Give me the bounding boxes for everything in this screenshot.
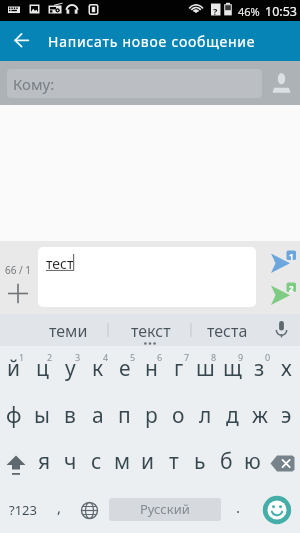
staticText: у — [65, 354, 76, 383]
staticText: 0 — [265, 351, 271, 363]
staticText: 1 — [19, 351, 25, 363]
staticText: 4 — [103, 351, 109, 363]
staticText: Русский — [140, 500, 190, 518]
staticText: ф — [6, 401, 22, 430]
staticText: ж — [252, 401, 268, 430]
button[interactable]: Кому: — [7, 69, 262, 98]
button[interactable]: Send with SIM 1 — [245, 247, 300, 279]
button[interactable]: ц — [28, 346, 56, 393]
staticText: а — [92, 401, 104, 430]
staticText: теми — [49, 320, 88, 342]
button[interactable]: . — [224, 487, 253, 533]
staticText: д — [226, 401, 239, 430]
button[interactable]: д — [219, 393, 246, 440]
button[interactable]: т — [161, 440, 187, 487]
button[interactable]: ь — [187, 440, 213, 487]
button[interactable]: п — [111, 393, 138, 440]
staticText: 10:53 — [265, 3, 297, 20]
button[interactable]: в — [56, 393, 84, 440]
staticText: ч — [64, 447, 77, 476]
button[interactable]: з — [246, 346, 273, 393]
staticText: ш — [196, 354, 215, 383]
button[interactable]: о — [165, 393, 192, 440]
staticText: 8 — [211, 351, 217, 363]
staticText: з — [254, 354, 265, 383]
button[interactable]: я — [31, 440, 57, 487]
button[interactable]: е — [111, 346, 138, 393]
button[interactable]: л — [192, 393, 219, 440]
button[interactable]: Change keyboard language — [73, 487, 106, 533]
staticText: 46% — [238, 4, 260, 19]
button[interactable]: Add attachment — [3, 279, 33, 309]
button[interactable]: ю — [239, 440, 265, 487]
button[interactable]: ы — [28, 393, 56, 440]
button[interactable]: р — [138, 393, 165, 440]
staticText: текст — [131, 320, 171, 342]
button[interactable]: э — [273, 393, 300, 440]
button[interactable]: теста — [191, 314, 263, 346]
button[interactable]: й — [0, 346, 28, 393]
button[interactable]: с — [83, 440, 109, 487]
button[interactable]: ф — [0, 393, 28, 440]
button[interactable]: к — [84, 346, 111, 393]
staticText: й — [7, 354, 21, 383]
button[interactable]: н — [138, 346, 165, 393]
staticText: н — [145, 354, 158, 383]
button[interactable]: ч — [57, 440, 83, 487]
staticText: р — [145, 401, 158, 430]
staticText: 7 — [184, 351, 190, 363]
staticText: о — [172, 401, 185, 430]
button[interactable]: тест — [38, 247, 256, 307]
staticText: Кому: — [13, 74, 55, 94]
staticText: л — [199, 401, 212, 430]
staticText: теста — [207, 320, 248, 342]
staticText: п — [118, 401, 131, 430]
staticText: 3 — [75, 351, 81, 363]
staticText: 2 — [289, 283, 294, 294]
button[interactable]: м — [109, 440, 135, 487]
staticText: Написать новое сообщение — [48, 32, 256, 51]
button[interactable]: Choose contact — [262, 61, 300, 105]
button[interactable]: Send with SIM 2 — [245, 279, 300, 311]
staticText: с — [91, 447, 102, 476]
button[interactable]: Back — [0, 21, 44, 61]
staticText: е — [119, 354, 131, 383]
button[interactable]: б — [213, 440, 239, 487]
staticText: 1 — [289, 251, 294, 262]
staticText: ь — [194, 447, 206, 476]
staticText: ? — [213, 5, 218, 17]
staticText: ?123 — [9, 501, 37, 519]
button[interactable]: Voice input — [263, 314, 300, 346]
button[interactable]: х — [273, 346, 300, 393]
button[interactable]: г — [165, 346, 192, 393]
staticText: и — [141, 447, 155, 476]
button[interactable]: Русский — [109, 498, 221, 521]
button[interactable]: текст — [110, 314, 191, 346]
button[interactable]: щ — [219, 346, 246, 393]
button[interactable]: теми — [23, 314, 114, 346]
staticText: к — [92, 354, 104, 383]
staticText: 6 — [157, 351, 163, 363]
staticText: . — [236, 497, 241, 517]
staticText: 2 — [47, 351, 53, 363]
button[interactable]: Emoji — [253, 487, 300, 533]
button[interactable]: и — [135, 440, 161, 487]
button[interactable]: Backspace — [265, 440, 300, 487]
staticText: м — [114, 447, 131, 476]
button[interactable]: Shift — [0, 440, 31, 487]
button[interactable]: ж — [246, 393, 273, 440]
staticText: я — [38, 447, 51, 476]
button[interactable]: ?123 — [0, 487, 45, 533]
staticText: 5 — [130, 351, 136, 363]
button[interactable]: ш — [192, 346, 219, 393]
staticText: ы — [34, 401, 50, 430]
staticText: б — [220, 447, 233, 476]
button[interactable]: у — [56, 346, 84, 393]
button[interactable]: , — [45, 487, 73, 533]
button[interactable]: а — [84, 393, 111, 440]
staticText: ц — [36, 354, 49, 383]
staticText: х — [281, 354, 292, 383]
staticText: в — [64, 401, 76, 430]
staticText: т — [169, 447, 179, 476]
staticText: щ — [223, 354, 242, 383]
